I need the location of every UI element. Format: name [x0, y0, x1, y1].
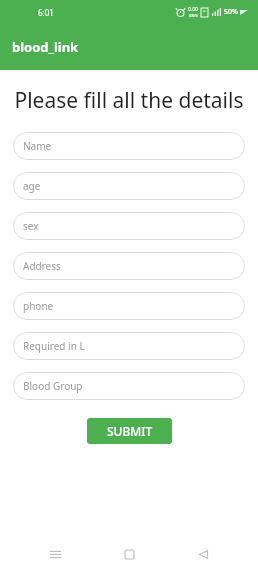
staticText: Required in L [23, 339, 85, 353]
staticText: Blood Group [23, 379, 83, 393]
staticText: phone [23, 299, 54, 313]
button[interactable]: Recent apps [36, 535, 74, 573]
staticText: 0.00 [188, 6, 198, 13]
button[interactable]: Blood Group [13, 372, 245, 400]
button[interactable]: Back [184, 535, 222, 573]
staticText: blood_link [12, 38, 79, 56]
staticText: 6:01 [38, 7, 54, 18]
button[interactable]: age [13, 172, 245, 200]
staticText: KB/S [189, 13, 198, 18]
staticText: Name [23, 139, 52, 153]
button[interactable]: Home [110, 535, 148, 573]
staticText: Address [23, 259, 61, 273]
button[interactable]: Address [13, 252, 245, 280]
button[interactable]: sex [13, 212, 245, 240]
staticText: Please fill all the details [13, 86, 245, 115]
staticText: 50% [224, 7, 238, 17]
button[interactable]: Name [13, 132, 245, 160]
button[interactable]: phone [13, 292, 245, 320]
staticText: SUBMIT [107, 423, 153, 439]
button[interactable]: Required in L [13, 332, 245, 360]
staticText: sex [23, 219, 39, 233]
staticText: age [23, 179, 41, 193]
button[interactable]: SUBMIT [87, 418, 172, 444]
